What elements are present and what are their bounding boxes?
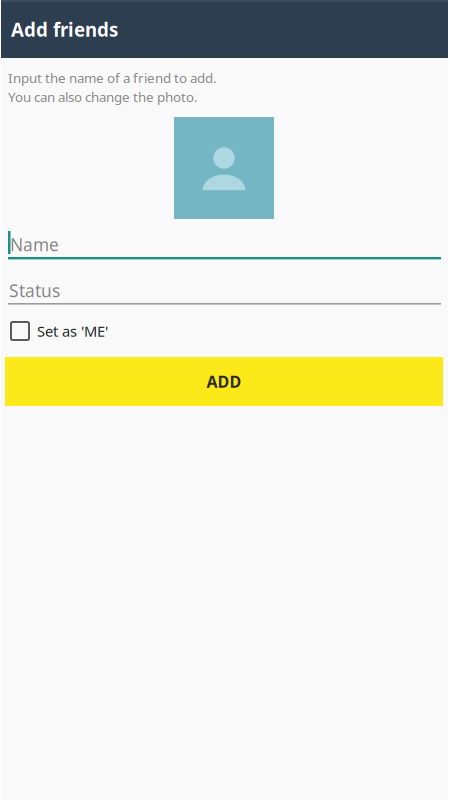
- staticText: Input the name of a friend to add.: [8, 69, 217, 87]
- button[interactable]: Change photo: [174, 117, 274, 219]
- button[interactable]: Name: [8, 228, 441, 264]
- staticText: Set as 'ME': [37, 321, 108, 341]
- staticText: Status: [9, 279, 60, 302]
- staticText: Name: [10, 233, 59, 256]
- button[interactable]: ADD: [5, 357, 443, 406]
- staticText: You can also change the photo.: [8, 88, 198, 106]
- button[interactable]: Status: [8, 274, 441, 310]
- button[interactable]: Set as 'ME': [11, 318, 191, 344]
- staticText: ADD: [206, 371, 241, 392]
- staticText: Add friends: [11, 17, 118, 42]
